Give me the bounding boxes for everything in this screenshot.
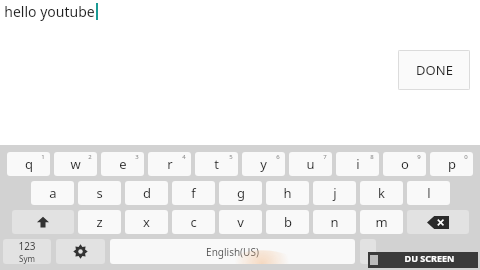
button[interactable]: k: [360, 181, 403, 205]
staticText: h: [283, 184, 292, 202]
staticText: y: [260, 155, 267, 173]
button[interactable]: x: [125, 210, 168, 234]
staticText: v: [237, 213, 244, 231]
staticText: 9: [417, 153, 421, 161]
staticText: t: [214, 155, 219, 173]
button[interactable]: w: [54, 152, 97, 176]
button[interactable]: l: [407, 181, 450, 205]
button[interactable]: g: [219, 181, 262, 205]
staticText: e: [119, 155, 127, 173]
staticText: hello youtube: [4, 2, 95, 21]
staticText: f: [191, 184, 196, 202]
staticText: a: [49, 184, 57, 202]
button[interactable]: s: [78, 181, 121, 205]
button[interactable]: v: [219, 210, 262, 234]
staticText: 1: [41, 153, 45, 161]
staticText: DU SCREEN RECORDER: [381, 252, 478, 268]
staticText: 6: [276, 153, 280, 161]
button[interactable]: r: [148, 152, 191, 176]
staticText: u: [306, 155, 315, 173]
button[interactable]: n: [313, 210, 356, 234]
staticText: r: [167, 155, 173, 173]
button[interactable]: b: [266, 210, 309, 234]
button[interactable]: Shift: [12, 210, 74, 234]
staticText: g: [237, 184, 245, 202]
button[interactable]: i: [336, 152, 379, 176]
staticText: b: [284, 213, 292, 231]
staticText: p: [448, 155, 456, 173]
staticText: n: [330, 213, 339, 231]
staticText: 123: [18, 239, 36, 253]
button[interactable]: 123: [3, 239, 51, 264]
staticText: 0: [464, 153, 468, 161]
button[interactable]: e: [101, 152, 144, 176]
staticText: x: [143, 213, 150, 231]
button[interactable]: h: [266, 181, 309, 205]
button[interactable]: DONE: [398, 50, 470, 90]
button[interactable]: q: [7, 152, 50, 176]
staticText: 8: [370, 153, 374, 161]
button[interactable]: c: [172, 210, 215, 234]
staticText: 5: [229, 153, 233, 161]
button[interactable]: Backspace: [407, 210, 469, 234]
staticText: c: [190, 213, 197, 231]
button[interactable]: j: [313, 181, 356, 205]
button[interactable]: m: [360, 210, 403, 234]
staticText: l: [427, 184, 431, 202]
staticText: m: [375, 213, 388, 231]
staticText: z: [96, 213, 103, 231]
button[interactable]: a: [31, 181, 74, 205]
button[interactable]: y: [242, 152, 285, 176]
staticText: i: [356, 155, 360, 173]
staticText: English(US): [206, 245, 259, 259]
staticText: d: [143, 184, 151, 202]
button[interactable]: Settings: [56, 239, 105, 264]
button[interactable]: o: [383, 152, 426, 176]
staticText: j: [333, 184, 337, 202]
staticText: 2: [88, 153, 92, 161]
button[interactable]: u: [289, 152, 332, 176]
button[interactable]: t: [195, 152, 238, 176]
staticText: k: [378, 184, 385, 202]
button[interactable]: d: [125, 181, 168, 205]
button[interactable]: hello youtube: [4, 2, 98, 21]
staticText: w: [70, 155, 81, 173]
staticText: DONE: [416, 61, 453, 79]
staticText: s: [96, 184, 103, 202]
button[interactable]: Emoji: [360, 239, 376, 264]
button[interactable]: f: [172, 181, 215, 205]
button[interactable]: z: [78, 210, 121, 234]
button[interactable]: English(US): [110, 239, 355, 264]
staticText: Sym: [19, 253, 35, 264]
staticText: 7: [323, 153, 327, 161]
staticText: 3: [135, 153, 139, 161]
button[interactable]: p: [430, 152, 473, 176]
staticText: q: [25, 155, 33, 173]
staticText: o: [401, 155, 409, 173]
staticText: 4: [182, 153, 186, 161]
